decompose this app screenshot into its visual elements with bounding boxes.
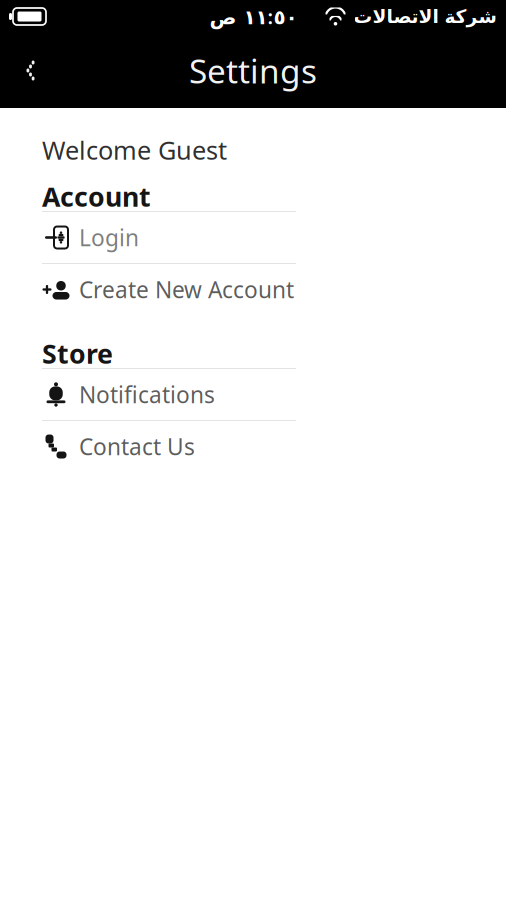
button[interactable]: Login bbox=[42, 212, 296, 263]
staticText: Notifications bbox=[79, 379, 215, 409]
staticText: Login bbox=[79, 222, 139, 252]
staticText: Welcome Guest bbox=[42, 133, 227, 167]
staticText: شركة الاتصالات bbox=[353, 6, 496, 27]
staticText: Create New Account bbox=[79, 274, 294, 304]
button[interactable]: Back bbox=[0, 41, 56, 99]
staticText: Account bbox=[42, 179, 151, 214]
staticText: Store bbox=[42, 336, 113, 371]
staticText: ١١:٥٠ ص bbox=[209, 3, 297, 30]
staticText: Contact Us bbox=[79, 431, 195, 461]
button[interactable]: Contact Us bbox=[42, 421, 296, 472]
button[interactable]: Notifications bbox=[42, 369, 296, 420]
button[interactable]: Create New Account bbox=[42, 264, 296, 315]
staticText: Settings bbox=[189, 48, 317, 93]
